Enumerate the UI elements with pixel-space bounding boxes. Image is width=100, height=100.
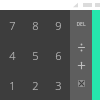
staticText: 9: [55, 18, 62, 33]
button[interactable]: 3: [47, 70, 70, 100]
staticText: 7: [9, 18, 16, 33]
button[interactable]: 2: [24, 70, 47, 100]
button[interactable]: DEL: [70, 10, 92, 38]
staticText: 6: [55, 48, 62, 63]
button[interactable]: 9: [47, 10, 70, 40]
staticText: 3: [55, 78, 62, 93]
staticText: DEL: [76, 21, 86, 28]
staticText: 8: [32, 18, 39, 33]
button[interactable]: 4: [0, 40, 24, 70]
button[interactable]: 1: [0, 70, 24, 100]
button[interactable]: 5: [24, 40, 47, 70]
staticText: 5: [32, 48, 39, 63]
button[interactable]: 8: [24, 10, 47, 40]
staticText: 4: [9, 48, 16, 63]
staticText: 1: [9, 78, 16, 93]
button[interactable]: 6: [47, 40, 70, 70]
button[interactable]: Plus: [70, 56, 92, 74]
button[interactable]: Divide: [70, 38, 92, 56]
button[interactable]: Multiply: [70, 74, 92, 92]
staticText: 2: [32, 78, 39, 93]
button[interactable]: 7: [0, 10, 24, 40]
